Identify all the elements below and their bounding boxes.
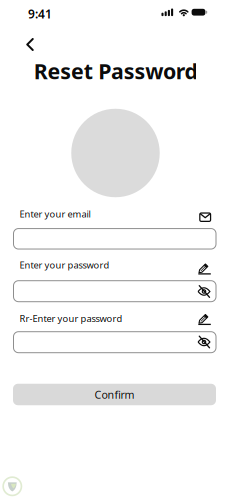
- button[interactable]: Show password: [197, 285, 211, 297]
- staticText: Confirm: [94, 387, 134, 402]
- button[interactable]: Email field: [13, 228, 216, 250]
- button[interactable]: Show re-entered password: [197, 336, 211, 348]
- button[interactable]: Edit re-entered password: [198, 312, 211, 325]
- staticText: Enter your email: [19, 208, 90, 220]
- staticText: Enter your password: [19, 259, 109, 271]
- button[interactable]: Confirm: [13, 384, 216, 405]
- staticText: 9:41: [28, 6, 52, 22]
- button[interactable]: Password field: [13, 280, 216, 302]
- button[interactable]: Edit password: [198, 261, 211, 274]
- button[interactable]: Re-enter password field: [13, 331, 216, 353]
- staticText: Reset Password: [34, 57, 197, 85]
- staticText: Rr-Enter your password: [19, 312, 122, 324]
- button[interactable]: Back: [21, 35, 39, 53]
